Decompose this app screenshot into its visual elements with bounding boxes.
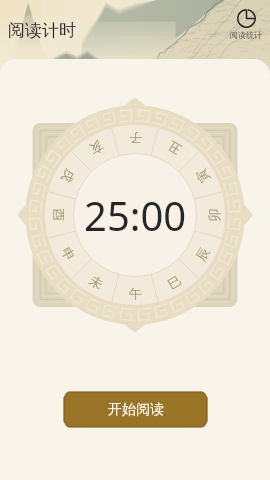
staticText: 辰 [192,244,213,264]
staticText: 戌 [58,166,79,186]
staticText: 巳 [165,272,184,292]
staticText: 未 [87,272,106,292]
button[interactable]: 阅读统计 [230,9,262,40]
staticText: 丑 [165,138,184,158]
staticText: 子 [129,130,142,146]
staticText: 寅 [192,166,213,186]
button[interactable]: 开始阅读 [64,392,207,427]
staticText: 开始阅读 [108,401,164,419]
staticText: 25:00 [84,188,187,242]
staticText: 卯 [205,208,221,221]
staticText: 申 [58,244,79,264]
staticText: 阅读计时 [8,20,76,41]
staticText: 午 [129,285,142,301]
staticText: 亥 [87,138,106,158]
staticText: 阅读统计 [230,30,262,40]
staticText: 酉 [50,208,66,221]
